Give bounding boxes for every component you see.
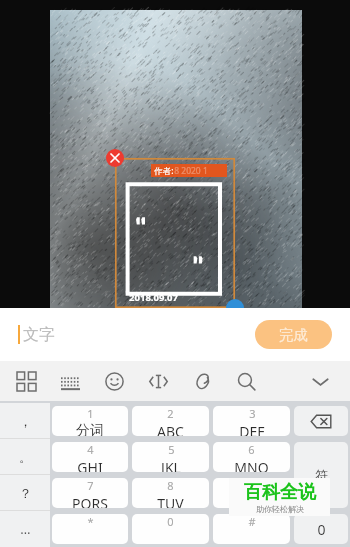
staticText: 2 bbox=[167, 406, 174, 421]
staticText: ？ bbox=[19, 485, 32, 501]
staticText: 9 bbox=[249, 478, 256, 493]
staticText: 5 bbox=[168, 442, 175, 457]
button[interactable]: Keyboard bbox=[53, 364, 87, 398]
button[interactable]: Attach bbox=[185, 364, 219, 398]
staticText: 1 bbox=[87, 406, 94, 421]
staticText: JKL bbox=[161, 458, 181, 472]
staticText: # bbox=[248, 514, 256, 529]
staticText: ABC bbox=[157, 422, 184, 436]
staticText: 分词 bbox=[76, 422, 104, 436]
button[interactable]: # bbox=[213, 514, 290, 544]
staticText: 0 bbox=[317, 520, 326, 539]
button[interactable]: … bbox=[0, 511, 50, 547]
staticText: 3 bbox=[249, 406, 256, 421]
button[interactable]: 4 bbox=[52, 442, 128, 472]
staticText: 符 bbox=[315, 467, 328, 483]
staticText: ， bbox=[19, 413, 32, 429]
button[interactable]: Hide keyboard bbox=[303, 364, 337, 398]
staticText: PQRS bbox=[72, 494, 108, 508]
button[interactable]: 9 bbox=[213, 478, 290, 508]
staticText: 8 bbox=[167, 478, 174, 493]
button[interactable]: ？ bbox=[0, 475, 50, 511]
button[interactable]: 符 bbox=[294, 442, 348, 508]
button[interactable]: 5 bbox=[132, 442, 209, 472]
button[interactable]: 8 bbox=[132, 478, 209, 508]
staticText: 6 bbox=[248, 442, 255, 457]
staticText: GHI bbox=[77, 458, 103, 472]
button[interactable]: Emoji bbox=[97, 364, 131, 398]
button[interactable]: Apps bbox=[9, 364, 43, 398]
button[interactable]: 3 bbox=[213, 406, 290, 436]
staticText: 0 bbox=[167, 514, 174, 529]
button[interactable]: Resize sticker bbox=[226, 299, 244, 317]
button[interactable]: 6 bbox=[213, 442, 290, 472]
button[interactable]: 文字 bbox=[23, 325, 245, 345]
staticText: 作者: bbox=[154, 165, 174, 177]
staticText: MNO bbox=[234, 458, 269, 472]
staticText: TUV bbox=[157, 494, 184, 508]
staticText: 百科全说 bbox=[244, 481, 316, 504]
button[interactable]: ， bbox=[0, 403, 50, 439]
button[interactable]: 0 bbox=[294, 514, 348, 544]
button[interactable]: 7 bbox=[52, 478, 128, 508]
button[interactable]: 完成 bbox=[255, 320, 332, 349]
staticText: 7 bbox=[87, 478, 94, 493]
button[interactable]: 1 bbox=[52, 406, 128, 436]
button[interactable]: * bbox=[52, 514, 128, 544]
button[interactable]: 2 bbox=[132, 406, 209, 436]
staticText: 4 bbox=[87, 442, 94, 457]
staticText: 2018.09.07 bbox=[129, 291, 178, 304]
button[interactable]: Search bbox=[229, 364, 263, 398]
staticText: 8 2020 1 bbox=[174, 165, 208, 177]
button[interactable]: 作者: bbox=[151, 164, 227, 177]
staticText: * bbox=[87, 514, 94, 529]
button[interactable]: 。 bbox=[0, 439, 50, 475]
staticText: WXYZ bbox=[233, 494, 271, 508]
staticText: 助你轻松解决 bbox=[256, 504, 304, 514]
button[interactable]: Delete sticker bbox=[106, 149, 124, 167]
button[interactable]: 0 bbox=[132, 514, 209, 544]
button[interactable]: Backspace bbox=[294, 406, 348, 436]
staticText: 。 bbox=[19, 449, 32, 465]
button[interactable]: Text edit bbox=[141, 364, 175, 398]
staticText: 文字 bbox=[23, 325, 55, 345]
staticText: 完成 bbox=[279, 326, 308, 344]
staticText: DEF bbox=[239, 422, 265, 436]
staticText: … bbox=[20, 520, 31, 538]
